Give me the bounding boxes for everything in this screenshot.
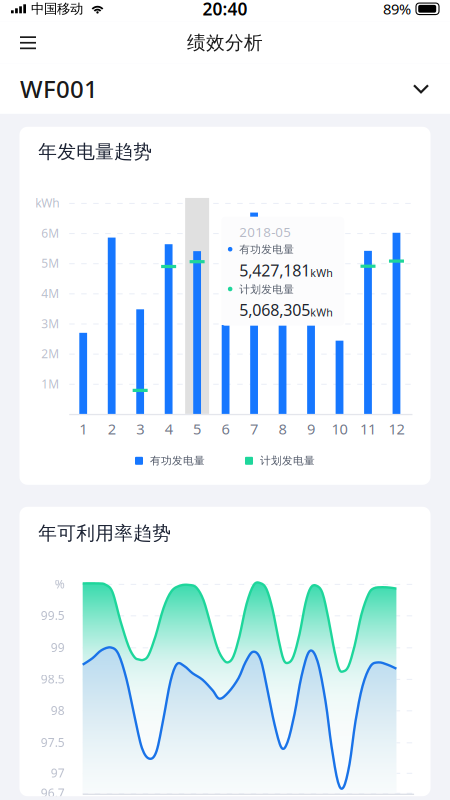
staticText: % [55,576,65,592]
staticText: 5,427,181 [239,260,310,281]
staticText: 4M [41,285,59,301]
staticText: 有功发电量 [239,243,294,256]
staticText: 绩效分析 [187,31,263,54]
staticText: 3 [136,419,144,439]
staticText: WF001 [20,73,98,105]
staticText: 6 [222,419,230,439]
staticText: 96.7 [41,785,65,800]
staticText: 2M [41,346,59,362]
staticText: 20:40 [202,0,247,20]
staticText: kWh [310,305,333,319]
staticText: 中国移动 [31,1,83,17]
staticText: 98.5 [41,671,65,687]
staticText: 99 [51,639,65,655]
staticText: 6M [41,225,59,241]
staticText: 2018-05 [239,223,291,241]
staticText: 99.5 [41,607,65,623]
button[interactable]: WF001 [0,64,450,114]
staticText: 有功发电量 [150,454,205,467]
staticText: 1 [79,419,87,439]
staticText: kWh [35,195,59,211]
staticText: 89% [383,0,411,19]
staticText: 10 [331,419,347,439]
button[interactable]: Menu [0,22,56,63]
staticText: 12 [388,419,404,439]
staticText: 5,068,305 [239,299,310,320]
staticText: 98 [51,702,65,718]
staticText: 7 [250,419,258,439]
staticText: 计划发电量 [239,283,294,296]
staticText: 5M [41,255,59,271]
staticText: 97 [51,765,65,781]
staticText: 年发电量趋势 [38,140,152,163]
staticText: kWh [310,266,333,280]
staticText: 11 [360,419,376,439]
staticText: 1M [41,376,59,392]
staticText: 计划发电量 [260,454,315,467]
staticText: 4 [165,419,173,439]
staticText: 8 [279,419,287,439]
staticText: 9 [307,419,315,439]
staticText: 2 [108,419,116,439]
staticText: 5 [193,419,201,439]
staticText: 年可利用率趋势 [38,522,171,545]
staticText: 97.5 [41,734,65,750]
staticText: 3M [41,315,59,331]
